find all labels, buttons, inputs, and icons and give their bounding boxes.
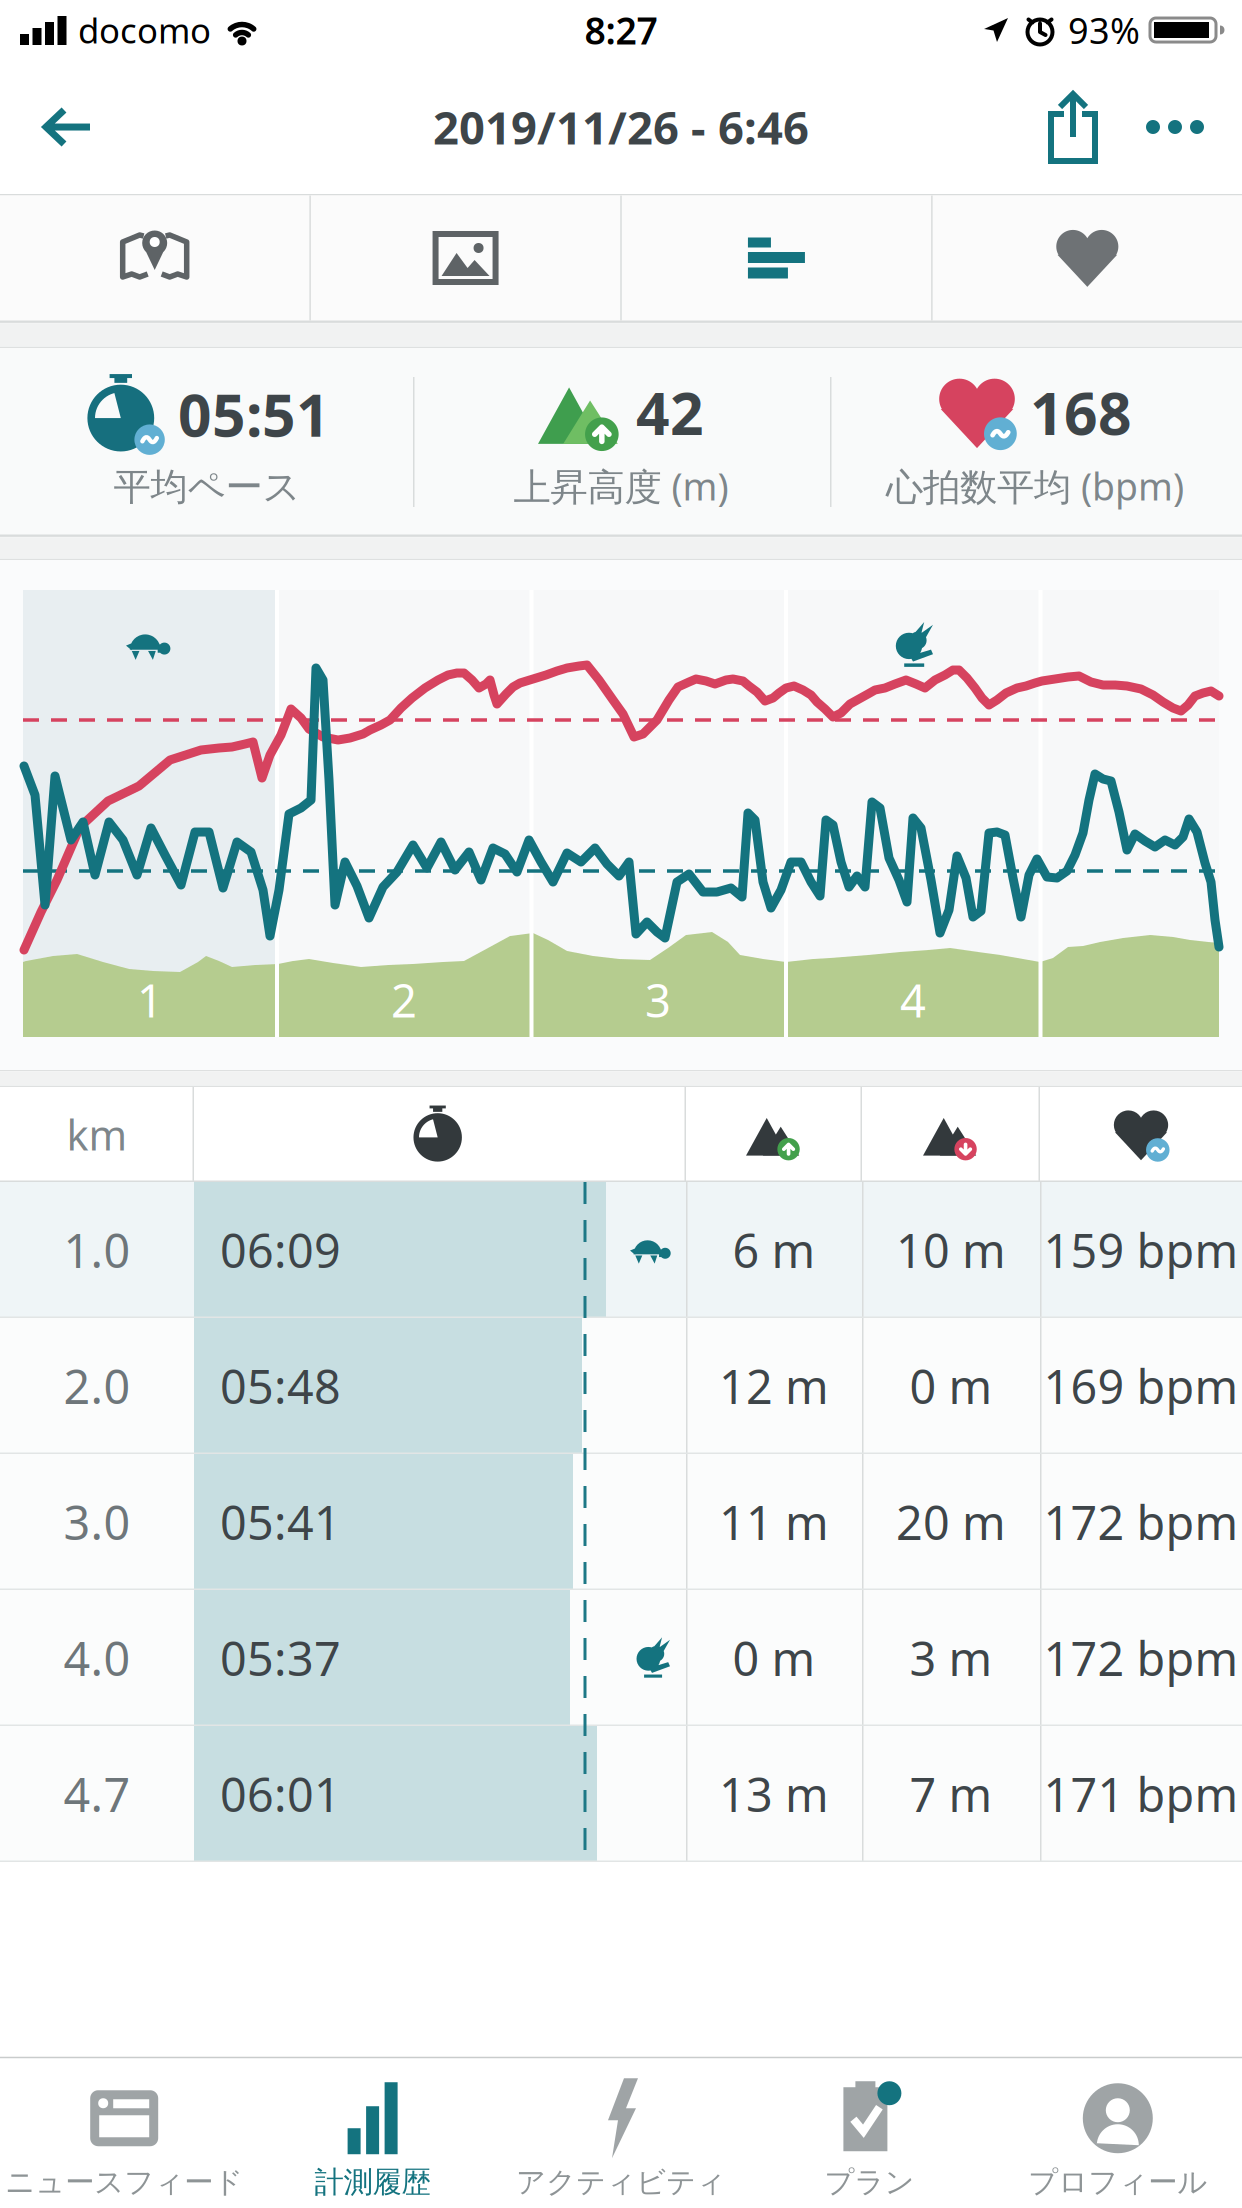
staticText: プロフィール bbox=[1028, 2164, 1207, 2200]
staticText: 169 bpm bbox=[1043, 1355, 1238, 1417]
button[interactable]: Back bbox=[0, 60, 112, 194]
button[interactable]: More bbox=[1146, 60, 1242, 194]
staticText: 心拍数平均 (bpm) bbox=[886, 461, 1184, 511]
staticText: 4.0 bbox=[63, 1627, 130, 1689]
staticText: docomo bbox=[78, 7, 211, 53]
button[interactable]: プラン bbox=[745, 2082, 994, 2200]
staticText: 42 bbox=[636, 373, 704, 451]
staticText: 1.0 bbox=[63, 1219, 130, 1281]
staticText: アクティビティ bbox=[516, 2164, 726, 2200]
staticText: 93% bbox=[1068, 6, 1140, 54]
staticText: 06:09 bbox=[220, 1219, 341, 1281]
staticText: 上昇高度 (m) bbox=[513, 461, 728, 511]
button[interactable]: Photos bbox=[311, 195, 620, 320]
staticText: ニュースフィード bbox=[5, 2164, 243, 2200]
button[interactable]: ニュースフィード bbox=[0, 2082, 248, 2200]
staticText: 20 m bbox=[896, 1491, 1006, 1553]
staticText: 6 m bbox=[732, 1219, 815, 1281]
staticText: 3 bbox=[645, 970, 671, 1030]
staticText: 8:27 bbox=[584, 5, 657, 55]
staticText: 11 m bbox=[719, 1491, 829, 1553]
staticText: 05:37 bbox=[220, 1627, 341, 1689]
staticText: 172 bpm bbox=[1043, 1491, 1238, 1553]
button[interactable]: Share bbox=[1048, 60, 1146, 194]
button[interactable]: Map bbox=[0, 195, 309, 320]
staticText: 05:51 bbox=[178, 375, 330, 453]
staticText: 4.7 bbox=[63, 1763, 130, 1825]
staticText: 平均ペース bbox=[113, 464, 300, 510]
staticText: 0 m bbox=[732, 1627, 815, 1689]
staticText: 2.0 bbox=[63, 1355, 130, 1417]
button[interactable]: プロフィール bbox=[994, 2082, 1242, 2200]
staticText: 05:41 bbox=[220, 1491, 341, 1553]
staticText: 1 bbox=[137, 970, 163, 1030]
staticText: 3 m bbox=[909, 1627, 992, 1689]
staticText: 168 bbox=[1030, 373, 1132, 451]
staticText: プラン bbox=[824, 2164, 914, 2200]
staticText: 13 m bbox=[719, 1763, 829, 1825]
staticText: 計測履歴 bbox=[315, 2164, 431, 2200]
staticText: km bbox=[66, 1107, 127, 1162]
staticText: 0 m bbox=[909, 1355, 992, 1417]
staticText: 05:48 bbox=[220, 1355, 341, 1417]
staticText: 2019/11/26 - 6:46 bbox=[433, 97, 809, 157]
button[interactable]: Splits bbox=[622, 195, 931, 320]
staticText: 12 m bbox=[719, 1355, 829, 1417]
staticText: 7 m bbox=[909, 1763, 992, 1825]
staticText: 4 bbox=[900, 970, 926, 1030]
button[interactable]: アクティビティ bbox=[497, 2082, 745, 2200]
button[interactable]: Heart rate bbox=[933, 195, 1242, 320]
staticText: 2 bbox=[391, 970, 417, 1030]
staticText: 159 bpm bbox=[1043, 1219, 1238, 1281]
staticText: 3.0 bbox=[63, 1491, 130, 1553]
staticText: 172 bpm bbox=[1043, 1627, 1238, 1689]
staticText: 10 m bbox=[896, 1219, 1006, 1281]
button[interactable]: 計測履歴 bbox=[248, 2082, 497, 2200]
staticText: 171 bpm bbox=[1043, 1763, 1238, 1825]
staticText: 06:01 bbox=[220, 1763, 341, 1825]
